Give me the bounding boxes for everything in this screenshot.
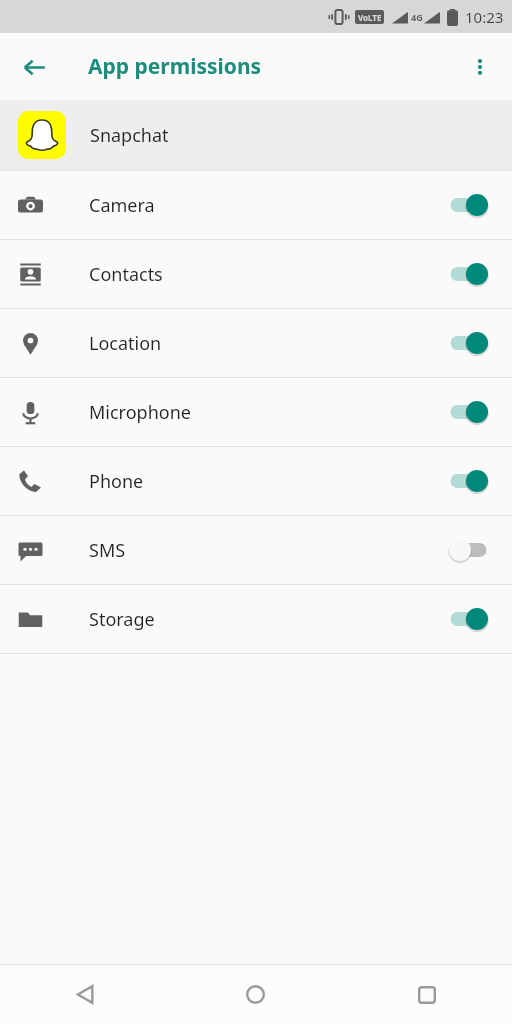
button[interactable]: Storage [0,585,512,653]
button[interactable]: Recent apps [341,965,512,1024]
staticText: Phone [89,469,442,494]
staticText: SMS [89,538,442,563]
staticText: Storage [89,607,442,632]
staticText: 10:23 [465,7,504,27]
button[interactable]: Snapchat [0,100,512,170]
button[interactable]: Phone permission toggle [442,459,494,503]
button[interactable]: Contacts [0,240,512,308]
staticText: App permissions [88,52,262,81]
button[interactable]: Contacts permission toggle [442,252,494,296]
button[interactable]: Back [0,965,170,1024]
button[interactable]: Storage permission toggle [442,597,494,641]
button[interactable]: Camera permission toggle [442,183,494,227]
button[interactable]: Microphone [0,378,512,446]
button[interactable]: SMS [0,516,512,584]
staticText: Location [89,331,442,356]
button[interactable]: Camera [0,171,512,239]
button[interactable]: Location [0,309,512,377]
staticText: VoLTE [358,12,382,23]
staticText: 4G [411,11,423,23]
staticText: Camera [89,193,442,218]
button[interactable]: SMS permission toggle [442,528,494,572]
button[interactable]: Microphone permission toggle [442,390,494,434]
button[interactable]: More options [456,43,504,91]
button[interactable]: Home [170,965,341,1024]
staticText: Microphone [89,400,442,425]
staticText: Contacts [89,262,442,287]
button[interactable]: Phone [0,447,512,515]
staticText: Snapchat [90,123,169,148]
button[interactable]: Back [10,43,58,91]
button[interactable]: Location permission toggle [442,321,494,365]
